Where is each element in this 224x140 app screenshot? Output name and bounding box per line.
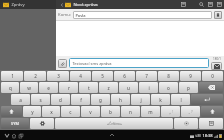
button[interactable]: n	[121, 106, 140, 117]
staticText: 8	[167, 73, 170, 79]
staticText: j	[140, 97, 142, 103]
button[interactable]: e	[39, 82, 58, 93]
button[interactable]: d	[51, 94, 70, 105]
button[interactable]: 6	[114, 71, 135, 81]
button[interactable]: .	[181, 106, 200, 117]
staticText: Nová zpráva	[73, 2, 98, 8]
staticText: x	[50, 109, 53, 115]
staticText: g	[99, 97, 102, 103]
button[interactable]: a	[11, 94, 30, 105]
staticText: 4	[79, 73, 82, 79]
button[interactable]: Shift	[201, 106, 223, 117]
staticText: h	[119, 97, 122, 103]
button[interactable]: 4	[70, 71, 91, 81]
staticText: e	[47, 85, 50, 91]
button[interactable]: Testovací sms zpráva	[69, 58, 209, 68]
button[interactable]: p	[179, 82, 198, 93]
staticText: t	[88, 85, 90, 91]
staticText: l	[180, 97, 182, 103]
button[interactable]: ,	[161, 106, 180, 117]
staticText: 2	[34, 73, 37, 79]
button[interactable]: Shift	[1, 106, 22, 117]
button[interactable]: l	[171, 94, 190, 105]
button[interactable]: j	[131, 94, 150, 105]
button[interactable]: 8	[158, 71, 179, 81]
button[interactable]: Key	[199, 118, 223, 129]
button[interactable]: i	[139, 82, 158, 93]
button[interactable]: Backspace	[199, 82, 223, 93]
button[interactable]: w	[20, 82, 38, 93]
button[interactable]: Attach	[206, 0, 215, 9]
button[interactable]: c	[61, 106, 80, 117]
staticText: ◂ Čeština ▸	[107, 122, 122, 126]
button[interactable]: Key	[174, 118, 198, 129]
button[interactable]: 1	[1, 71, 23, 81]
button[interactable]: f	[71, 94, 90, 105]
staticText: s	[39, 97, 42, 103]
staticText: 3	[57, 73, 60, 79]
button[interactable]: o	[159, 82, 178, 93]
staticText: ?	[191, 110, 193, 114]
staticText: r	[68, 85, 70, 91]
staticText: t.M	[195, 133, 201, 138]
button[interactable]: x	[42, 106, 60, 117]
button[interactable]: v	[81, 106, 100, 117]
button[interactable]: s	[31, 94, 50, 105]
button[interactable]: Zprávy	[0, 0, 56, 9]
staticText: Zprávy	[11, 2, 25, 8]
button[interactable]: u	[119, 82, 138, 93]
button[interactable]: Show keyboard	[108, 131, 116, 139]
button[interactable]: Menu	[179, 0, 188, 9]
button[interactable]: Home	[10, 132, 17, 139]
button[interactable]: q	[1, 82, 19, 93]
staticText: Pavla	[75, 13, 86, 18]
button[interactable]: Pavla	[73, 11, 212, 19]
button[interactable]: 2	[24, 71, 46, 81]
staticText: m	[148, 109, 153, 115]
button[interactable]: 3	[47, 71, 69, 81]
button[interactable]: Key	[30, 118, 54, 129]
staticText: b	[109, 109, 112, 115]
button[interactable]: z	[99, 82, 118, 93]
button[interactable]: Back	[3, 132, 10, 139]
button[interactable]: 7	[136, 71, 157, 81]
staticText: 18:38	[202, 133, 213, 138]
button[interactable]: Search	[197, 0, 206, 9]
button[interactable]: r	[59, 82, 78, 93]
staticText: a	[19, 97, 22, 103]
staticText: q	[9, 85, 12, 91]
button[interactable]: 5	[92, 71, 113, 81]
button[interactable]: Send message	[211, 62, 222, 70]
staticText: 9	[189, 73, 192, 79]
button[interactable]: SYM	[1, 118, 29, 129]
staticText: 5	[101, 73, 104, 79]
staticText: 6	[123, 73, 126, 79]
staticText: u	[127, 85, 130, 91]
staticText: d	[59, 97, 62, 103]
button[interactable]: g	[91, 94, 110, 105]
button[interactable]: Pick contact	[214, 11, 222, 19]
staticText: 0	[211, 73, 214, 79]
staticText: Komu:	[58, 12, 71, 18]
staticText: !	[172, 110, 173, 114]
button[interactable]: Enter	[191, 94, 223, 105]
button[interactable]: Attach	[58, 59, 67, 68]
button[interactable]: 0	[202, 71, 223, 81]
button[interactable]: h	[111, 94, 130, 105]
button[interactable]: m	[141, 106, 160, 117]
staticText: 1	[11, 73, 14, 79]
button[interactable]: 9	[180, 71, 201, 81]
staticText: 7	[145, 73, 148, 79]
staticText: ,	[169, 109, 171, 115]
button[interactable]: Back	[58, 1, 65, 8]
button[interactable]: t	[79, 82, 98, 93]
button[interactable]: More options	[215, 0, 224, 9]
button[interactable]: Recents	[17, 132, 24, 139]
button[interactable]: k	[151, 94, 170, 105]
button[interactable]: Key	[55, 118, 173, 129]
button[interactable]: y	[23, 106, 41, 117]
staticText: w	[27, 85, 31, 91]
button[interactable]: b	[101, 106, 120, 117]
